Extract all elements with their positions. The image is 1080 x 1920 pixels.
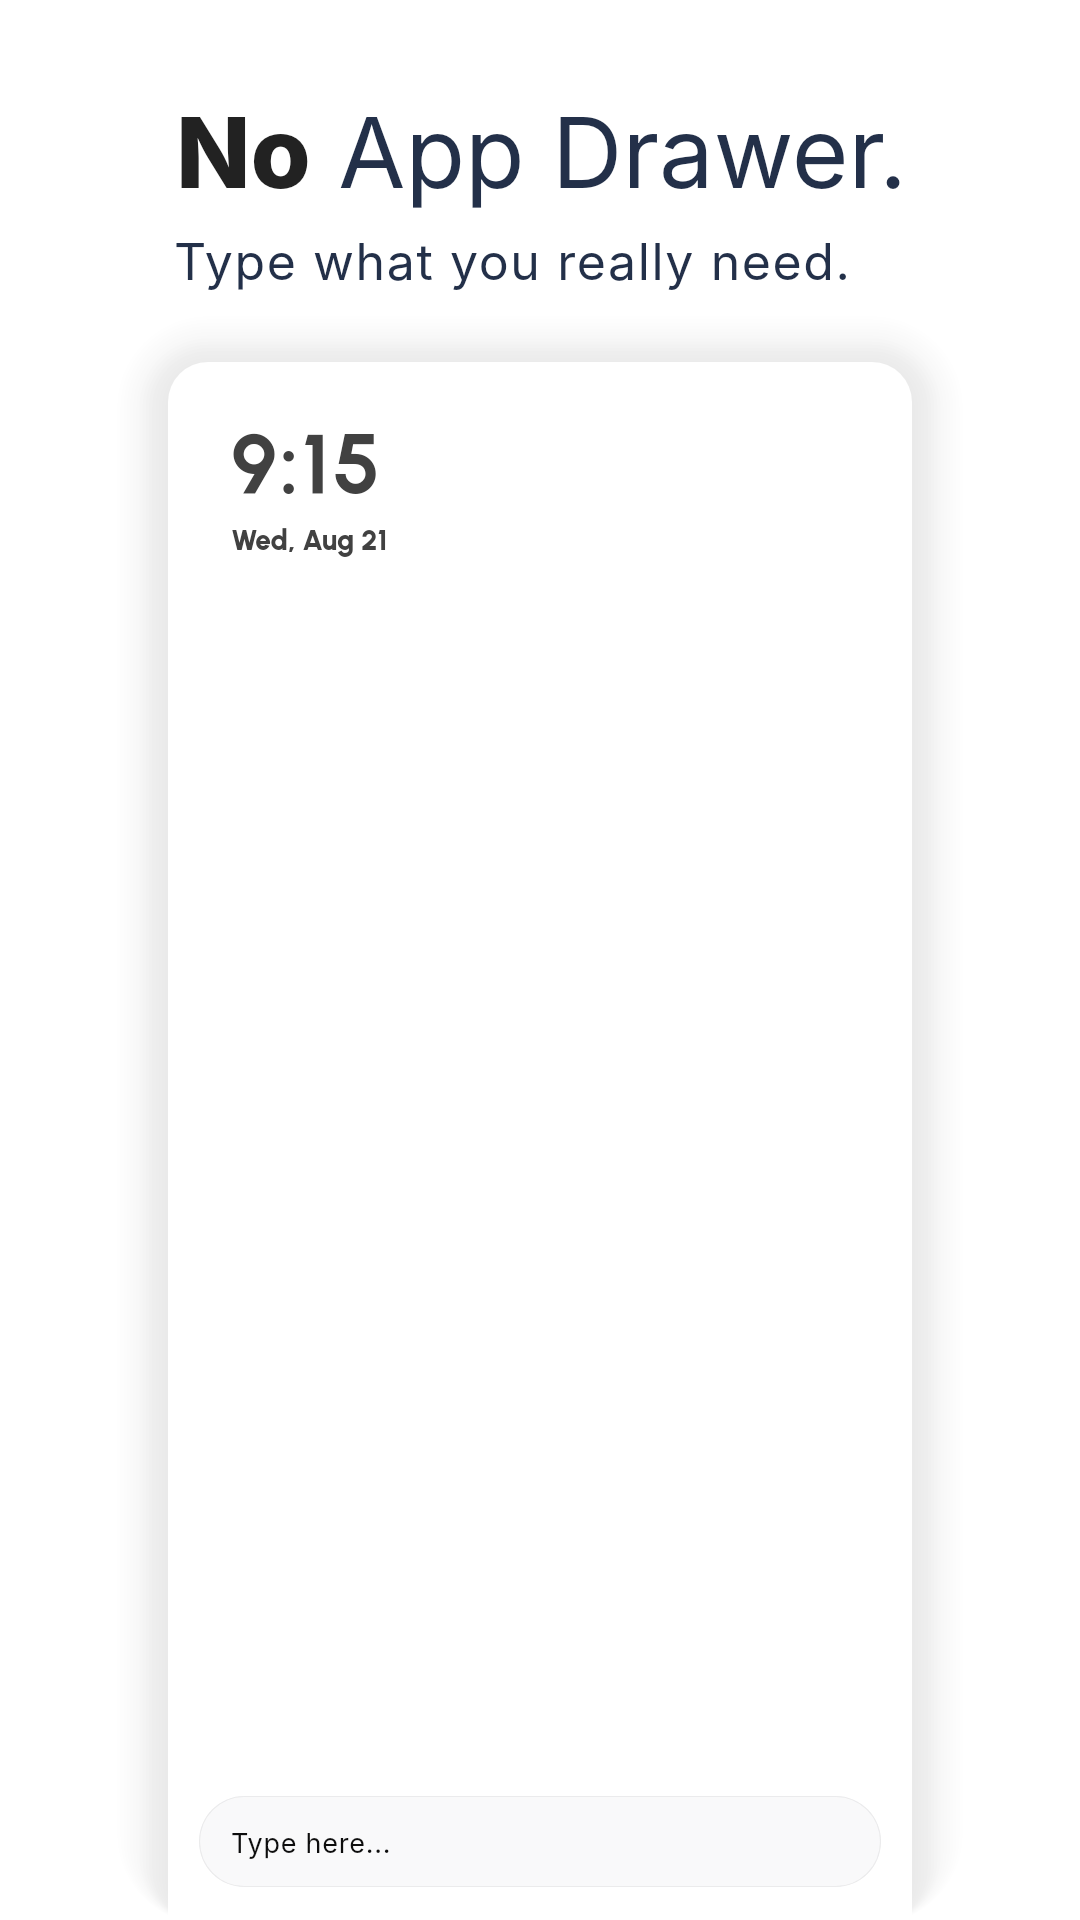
staticText: No App Drawer.: [176, 94, 908, 212]
staticText: Wed, Aug 21: [231, 523, 388, 557]
staticText: 9:15: [231, 413, 384, 514]
staticText: Type what you really need.: [174, 232, 852, 292]
staticText: Type here...: [231, 1827, 392, 1860]
button[interactable]: Search apps: [199, 1796, 881, 1887]
